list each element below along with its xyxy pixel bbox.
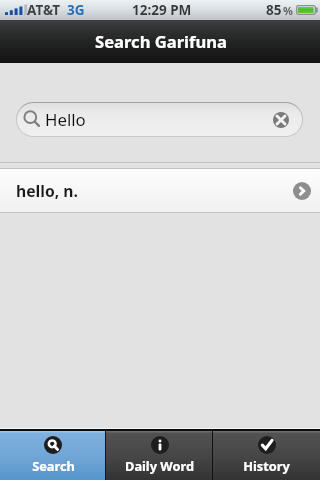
button[interactable]: Clear text <box>273 112 289 128</box>
staticText: Daily Word <box>125 457 194 474</box>
button[interactable]: Daily Word <box>106 431 213 480</box>
button[interactable]: Hello <box>17 103 302 136</box>
button[interactable]: Search <box>0 431 106 480</box>
staticText: Search Garifuna <box>95 30 228 53</box>
button[interactable]: hello, n. <box>0 169 320 212</box>
staticText: % <box>283 3 293 18</box>
staticText: 85 <box>266 1 282 19</box>
staticText: Search <box>32 457 75 474</box>
staticText: 12:29 PM <box>132 1 192 19</box>
staticText: hello, n. <box>16 180 78 201</box>
staticText: AT&T <box>27 1 61 19</box>
staticText: 3G <box>67 1 85 19</box>
staticText: History <box>243 457 290 474</box>
button[interactable]: History <box>213 431 320 480</box>
staticText: Hello <box>45 108 86 131</box>
